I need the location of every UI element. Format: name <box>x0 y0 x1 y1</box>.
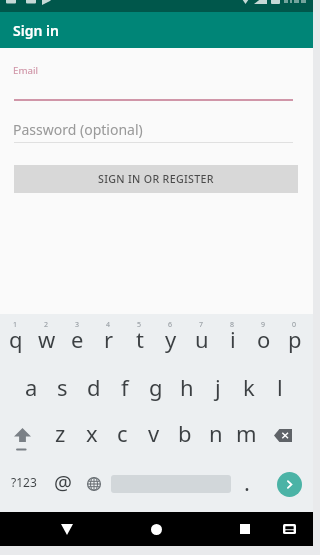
staticText: r <box>104 324 114 354</box>
button[interactable]: Recents <box>200 512 290 546</box>
button[interactable]: Space <box>109 461 232 507</box>
button[interactable]: f <box>109 366 140 412</box>
staticText: Sign in <box>13 21 59 40</box>
button[interactable]: l <box>264 366 295 412</box>
staticText: n <box>209 418 223 448</box>
staticText: h <box>180 372 194 402</box>
staticText: 3 <box>75 320 80 330</box>
button[interactable]: 5 <box>124 320 155 366</box>
staticText: i <box>230 324 236 354</box>
staticText: e <box>71 324 84 354</box>
staticText: f <box>121 372 129 402</box>
staticText: w <box>38 324 56 354</box>
staticText: 0 <box>292 320 297 330</box>
staticText: m <box>236 418 257 448</box>
button[interactable]: x <box>76 412 107 458</box>
staticText: SIGN IN OR REGISTER <box>98 172 214 187</box>
staticText: d <box>87 372 101 402</box>
button[interactable]: n <box>200 412 231 458</box>
staticText: q <box>9 324 23 354</box>
staticText: @ <box>54 469 72 496</box>
staticText: g <box>149 372 163 402</box>
button[interactable]: v <box>138 412 169 458</box>
button[interactable]: Sign in <box>0 12 313 48</box>
button[interactable]: Switch keyboard <box>275 512 303 546</box>
staticText: Email <box>13 64 38 77</box>
button[interactable]: z <box>45 412 76 458</box>
button[interactable]: SIGN IN OR REGISTER <box>14 165 298 193</box>
button[interactable]: 3 <box>62 320 93 366</box>
button[interactable]: Delete <box>262 412 303 458</box>
button[interactable]: 7 <box>186 320 217 366</box>
staticText: 5 <box>137 320 142 330</box>
button[interactable]: m <box>231 412 262 458</box>
staticText: Password (optional) <box>13 120 143 139</box>
staticText: p <box>288 324 302 354</box>
button[interactable]: k <box>233 366 264 412</box>
staticText: 7 <box>199 320 204 330</box>
button[interactable]: Change language <box>78 461 109 507</box>
button[interactable]: ?123 <box>0 461 47 507</box>
staticText: t <box>136 324 144 354</box>
button[interactable]: a <box>16 366 47 412</box>
button[interactable]: Back <box>22 512 112 546</box>
staticText: 9 <box>261 320 266 330</box>
button[interactable]: . <box>232 461 261 507</box>
staticText: y <box>165 324 177 354</box>
staticText: 4 <box>106 320 111 330</box>
staticText: ?123 <box>11 474 37 490</box>
button[interactable]: d <box>78 366 109 412</box>
button[interactable]: b <box>169 412 200 458</box>
staticText: j <box>215 372 221 402</box>
staticText: b <box>178 418 192 448</box>
button[interactable]: Home <box>111 512 201 546</box>
staticText: x <box>86 418 98 448</box>
button[interactable]: @ <box>47 461 78 507</box>
button[interactable]: 9 <box>248 320 279 366</box>
button[interactable]: g <box>140 366 171 412</box>
button[interactable]: h <box>171 366 202 412</box>
button[interactable]: s <box>47 366 78 412</box>
staticText: o <box>257 324 271 354</box>
button[interactable]: j <box>202 366 233 412</box>
button[interactable]: Shift <box>0 412 45 458</box>
button[interactable]: 2 <box>31 320 62 366</box>
staticText: z <box>55 418 66 448</box>
staticText: 1 <box>13 320 18 330</box>
staticText: u <box>195 324 209 354</box>
staticText: k <box>243 372 255 402</box>
staticText: 2 <box>44 320 49 330</box>
staticText: c <box>117 418 128 448</box>
button[interactable]: 6 <box>155 320 186 366</box>
staticText: a <box>25 372 38 402</box>
staticText: v <box>148 418 160 448</box>
button[interactable]: 1 <box>0 320 31 366</box>
button[interactable]: 8 <box>217 320 248 366</box>
staticText: 8 <box>230 320 235 330</box>
button[interactable]: 4 <box>93 320 124 366</box>
button[interactable]: 0 <box>279 320 310 366</box>
staticText: s <box>57 372 68 402</box>
button[interactable]: Enter <box>261 461 313 507</box>
button[interactable]: c <box>107 412 138 458</box>
staticText: l <box>277 372 283 402</box>
staticText: 6 <box>168 320 173 330</box>
staticText: . <box>244 467 250 497</box>
